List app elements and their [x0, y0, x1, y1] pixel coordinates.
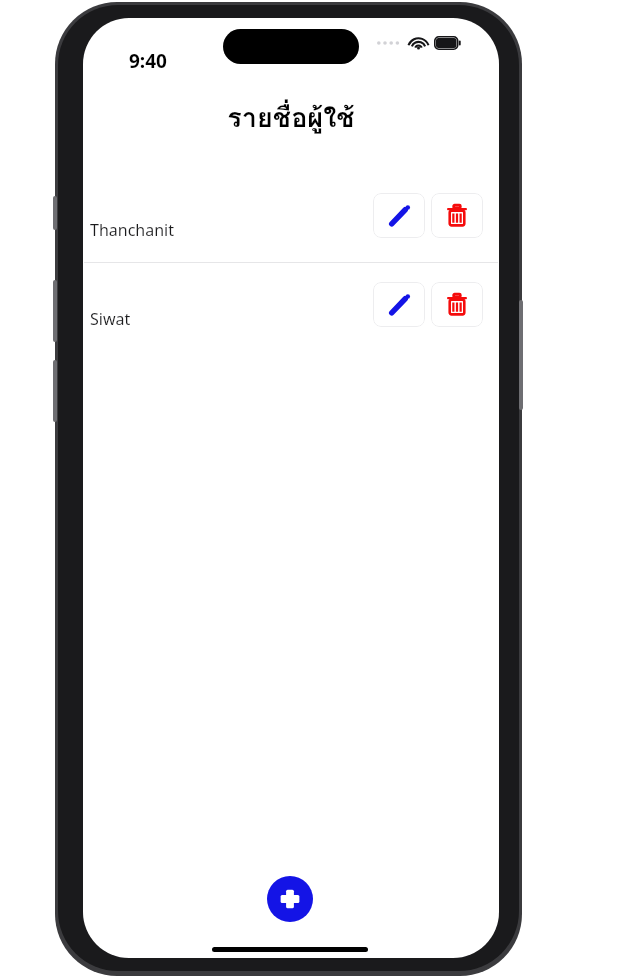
- button[interactable]: Siwat: [83, 263, 499, 351]
- button[interactable]: Delete: [431, 193, 483, 238]
- staticText: 9:40: [129, 48, 167, 74]
- button[interactable]: Add user: [267, 876, 313, 922]
- button[interactable]: Edit: [373, 282, 425, 327]
- staticText: รายชื่อผู้ใช้: [83, 96, 499, 139]
- staticText: Thanchanit: [90, 219, 174, 241]
- button[interactable]: Edit: [373, 193, 425, 238]
- button[interactable]: Delete: [431, 282, 483, 327]
- button[interactable]: Thanchanit: [83, 174, 499, 262]
- staticText: Siwat: [90, 308, 131, 330]
